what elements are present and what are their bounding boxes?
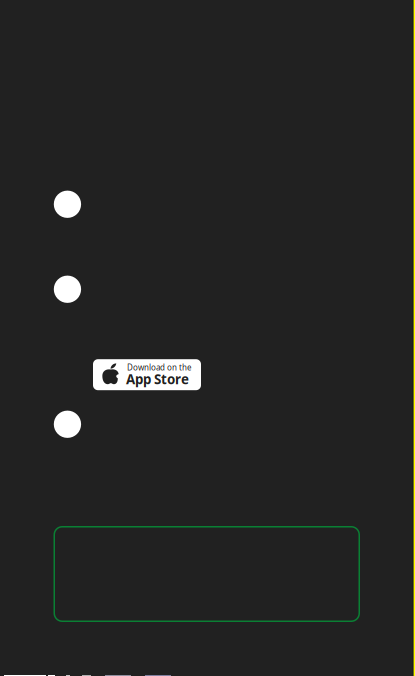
staticText: Download on the [127, 362, 192, 373]
staticText: App Store [126, 370, 189, 388]
button[interactable]: Download on the App Store [93, 359, 201, 390]
